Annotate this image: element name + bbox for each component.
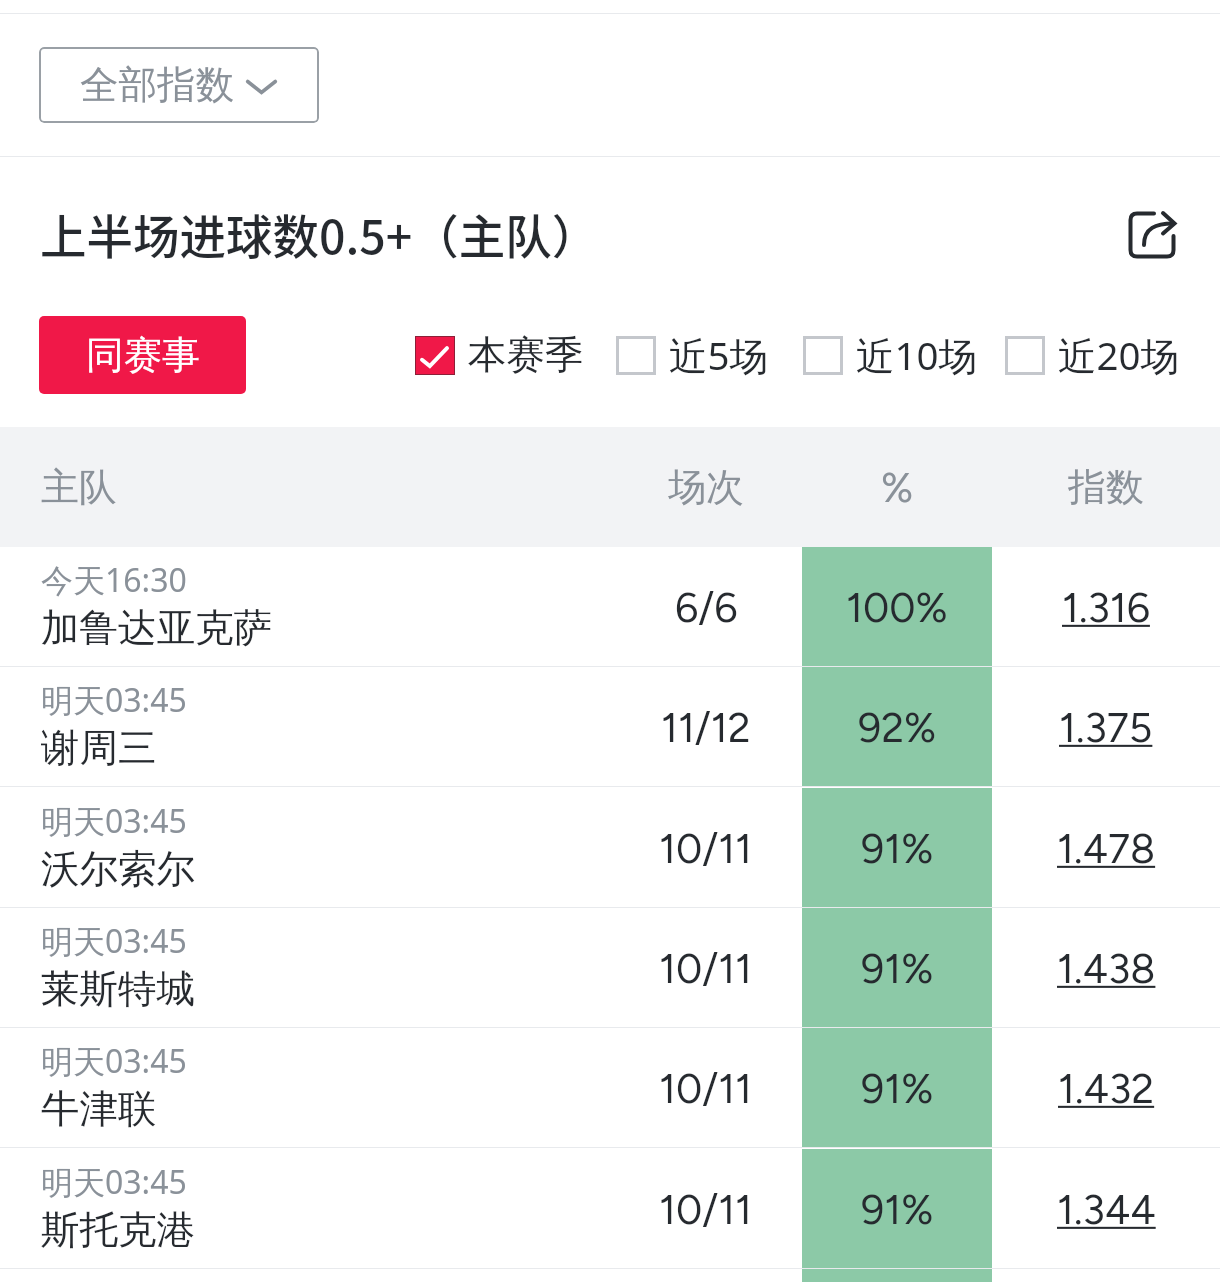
staticText: 加鲁达亚克萨: [41, 604, 272, 653]
button[interactable]: 近10场: [803, 325, 978, 385]
staticText: %: [881, 463, 914, 512]
staticText: 场次: [668, 463, 744, 511]
staticText: 10/11: [659, 1064, 753, 1113]
staticText: 近5场: [669, 329, 769, 382]
staticText: 1.438: [1057, 944, 1156, 993]
staticText: 本赛季: [468, 331, 584, 380]
staticText: 100%: [846, 583, 948, 632]
button[interactable]: 明天03:45: [0, 908, 1220, 1028]
staticText: 10/11: [659, 944, 753, 993]
staticText: 6/6: [675, 583, 738, 632]
staticText: 10/11: [659, 824, 753, 873]
staticText: 明天03:45: [41, 1160, 187, 1204]
staticText: 明天03:45: [41, 1039, 187, 1083]
staticText: 1.432: [1058, 1064, 1155, 1113]
button[interactable]: 近5场: [616, 325, 769, 385]
staticText: 91%: [861, 1064, 934, 1113]
button[interactable]: Share: [1121, 204, 1183, 266]
staticText: 10/11: [659, 1185, 753, 1234]
staticText: 谢周三: [41, 724, 157, 773]
staticText: 今天16:30: [41, 558, 187, 602]
button[interactable]: 明天03:45: [0, 1269, 1220, 1282]
button[interactable]: 近20场: [1005, 325, 1180, 385]
staticText: 全部指数: [80, 61, 234, 110]
staticText: 1.375: [1059, 703, 1153, 752]
staticText: 近20场: [1058, 329, 1180, 382]
staticText: 1.478: [1057, 824, 1156, 873]
button[interactable]: 明天03:45: [0, 667, 1220, 787]
staticText: 1.344: [1057, 1185, 1156, 1234]
staticText: 明天03:45: [41, 919, 187, 963]
button[interactable]: 明天03:45: [0, 1149, 1220, 1269]
staticText: 上半场进球数0.5+（主队）: [40, 200, 599, 267]
staticText: 沃尔索尔: [41, 845, 195, 894]
staticText: 1.316: [1062, 583, 1150, 632]
staticText: 11/12: [661, 703, 751, 752]
staticText: 近10场: [856, 329, 978, 382]
staticText: 91%: [861, 944, 934, 993]
button[interactable]: 今天16:30: [0, 547, 1220, 667]
staticText: 主队: [41, 463, 117, 511]
staticText: 莱斯特城: [41, 965, 195, 1014]
staticText: 91%: [861, 824, 934, 873]
button[interactable]: 明天03:45: [0, 1028, 1220, 1148]
staticText: 92%: [858, 703, 937, 752]
staticText: 91%: [861, 1185, 934, 1234]
button[interactable]: 全部指数: [39, 47, 319, 123]
staticText: 指数: [1068, 463, 1144, 511]
staticText: 斯托克港: [41, 1206, 195, 1255]
staticText: 同赛事: [86, 331, 200, 379]
staticText: 明天03:45: [41, 678, 187, 722]
button[interactable]: 本赛季: [415, 325, 584, 385]
button[interactable]: 明天03:45: [0, 788, 1220, 908]
staticText: 明天03:45: [41, 799, 187, 843]
staticText: 牛津联: [41, 1085, 157, 1134]
button[interactable]: 同赛事: [39, 316, 246, 394]
